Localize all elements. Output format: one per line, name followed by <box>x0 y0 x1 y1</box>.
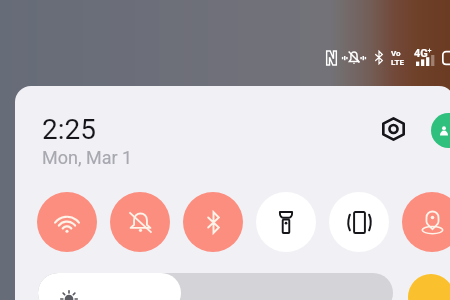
button[interactable]: Location <box>402 192 450 252</box>
button[interactable]: Settings <box>375 111 411 147</box>
button[interactable]: Auto rotate <box>408 274 450 300</box>
staticText: 4G <box>414 47 428 60</box>
button[interactable]: Wi-Fi <box>37 192 97 252</box>
button[interactable]: Flashlight <box>256 192 316 252</box>
button[interactable]: Silent <box>110 192 170 252</box>
staticText: Mon, Mar 1 <box>42 147 133 168</box>
staticText: 2:25 <box>42 113 96 146</box>
button[interactable] <box>38 273 393 300</box>
staticText: Vo <box>391 49 401 58</box>
button[interactable]: Vibrate <box>329 192 389 252</box>
button[interactable]: Account <box>431 113 450 148</box>
button[interactable]: Bluetooth <box>183 192 243 252</box>
staticText: LTE <box>391 58 404 67</box>
